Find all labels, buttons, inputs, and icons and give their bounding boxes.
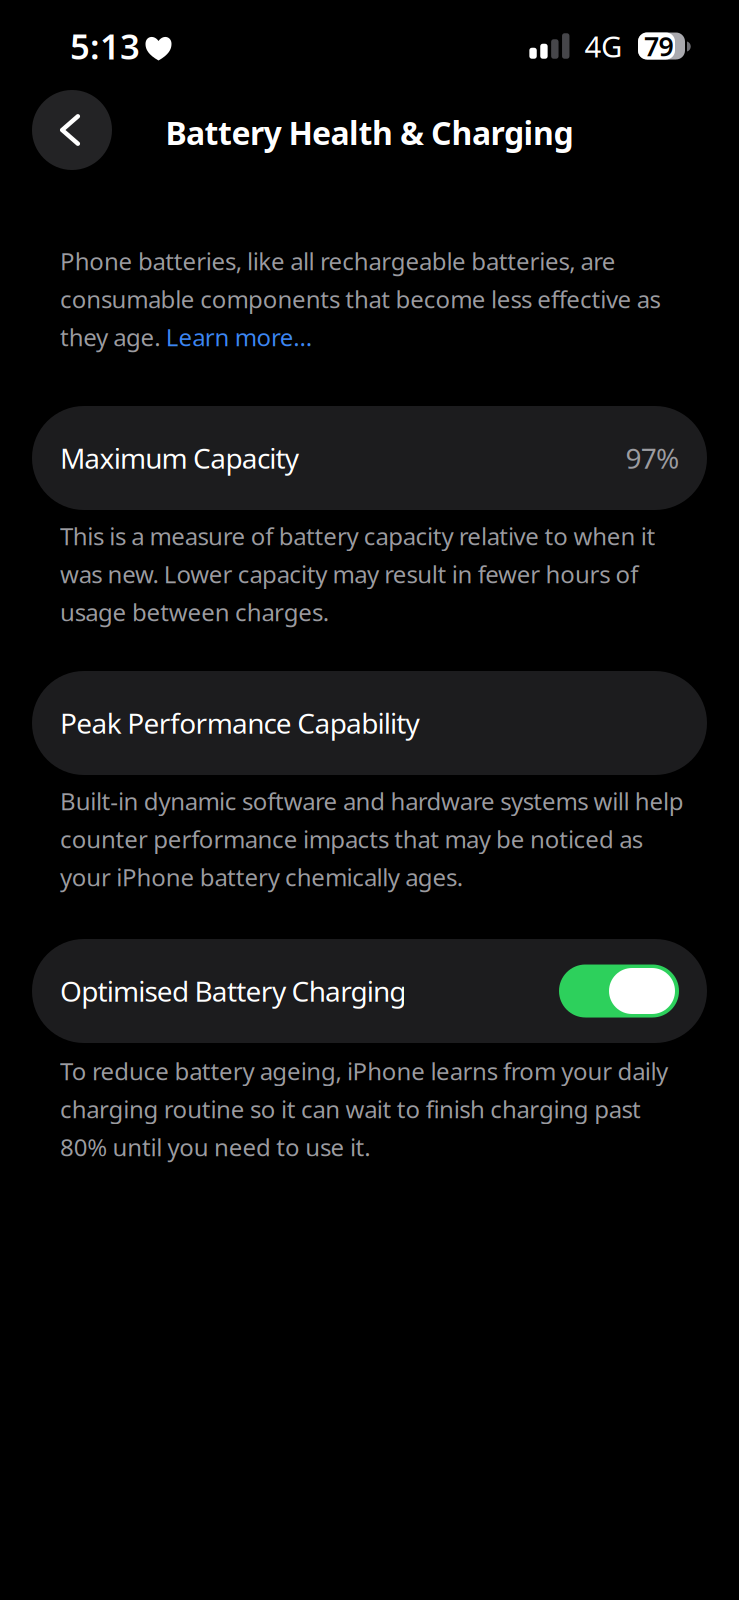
staticText: Learn more… <box>166 321 312 353</box>
staticText: Maximum Capacity <box>60 439 299 477</box>
staticText: To reduce battery ageing, iPhone learns … <box>60 1055 668 1087</box>
staticText: Battery Health & Charging <box>165 111 573 154</box>
button[interactable]: Peak Performance Capability <box>0 671 739 775</box>
staticText: Phone batteries, like all rechargeable b… <box>60 245 616 277</box>
button[interactable]: Maximum Capacity <box>0 406 739 510</box>
staticText: consumable components that become less e… <box>60 283 660 315</box>
staticText: Optimised Battery Charging <box>60 972 406 1010</box>
staticText: Built-in dynamic software and hardware s… <box>60 785 684 817</box>
staticText: This is a measure of battery capacity re… <box>60 520 655 552</box>
staticText: 80% until you need to use it. <box>60 1131 370 1163</box>
staticText: 4G <box>584 26 622 65</box>
staticText: your iPhone battery chemically ages. <box>60 861 463 893</box>
staticText: counter performance impacts that may be … <box>60 823 643 855</box>
staticText: 5:13 <box>70 23 140 69</box>
staticText: 79 <box>644 28 673 64</box>
button[interactable]: Optimised Battery Charging <box>0 939 739 1043</box>
staticText: was new. Lower capacity may result in fe… <box>60 558 638 590</box>
staticText: usage between charges. <box>60 596 329 628</box>
staticText: charging routine so it can wait to finis… <box>60 1093 641 1125</box>
button[interactable]: Back <box>32 90 112 170</box>
staticText: they age. <box>60 321 166 353</box>
staticText: 97% <box>625 439 679 477</box>
staticText: Peak Performance Capability <box>60 704 419 742</box>
button[interactable]: Learn more… <box>166 321 312 353</box>
